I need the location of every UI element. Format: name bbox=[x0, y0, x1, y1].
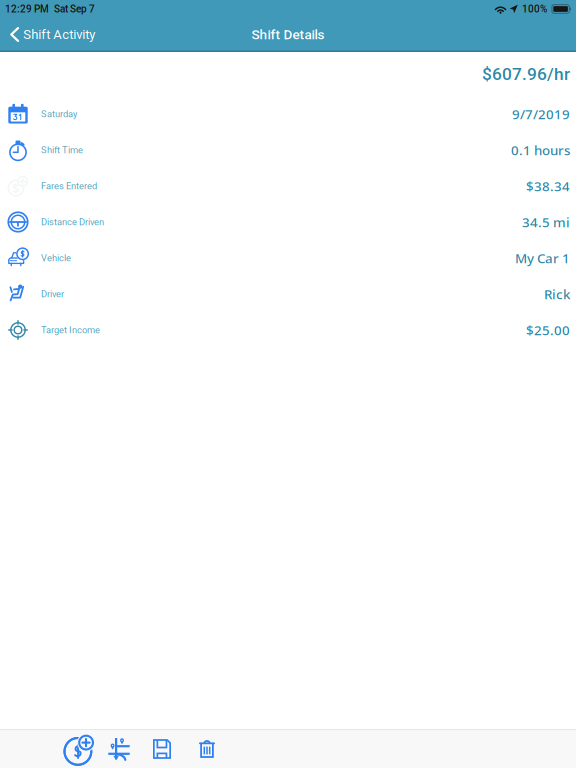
staticText: Distance Driven bbox=[41, 216, 104, 227]
staticText: 100% bbox=[522, 3, 547, 15]
button[interactable]: Map bbox=[99, 731, 135, 767]
staticText: $38.34 bbox=[526, 177, 570, 195]
staticText: Vehicle bbox=[41, 252, 71, 263]
staticText: Target Income bbox=[41, 324, 100, 335]
staticText: 34.5 mi bbox=[522, 213, 570, 231]
button[interactable]: Add fare bbox=[60, 731, 96, 767]
button[interactable]: Shift Activity bbox=[0, 21, 103, 48]
staticText: Shift Time bbox=[41, 144, 83, 155]
staticText: $ bbox=[12, 179, 20, 197]
staticText: Shift Details bbox=[251, 26, 324, 42]
staticText: Sat Sep 7 bbox=[54, 3, 95, 15]
staticText: $25.00 bbox=[526, 321, 570, 339]
staticText: $607.96/hr bbox=[482, 64, 570, 84]
staticText: Saturday bbox=[41, 108, 77, 119]
button[interactable]: Delete bbox=[189, 731, 225, 767]
staticText: Shift Activity bbox=[23, 27, 95, 42]
staticText: Rick bbox=[544, 285, 570, 303]
staticText: My Car 1 bbox=[515, 249, 570, 267]
staticText: 0.1 hours bbox=[511, 141, 570, 159]
staticText: Fares Entered bbox=[41, 180, 97, 191]
button[interactable]: Save bbox=[144, 731, 180, 767]
staticText: Driver bbox=[41, 288, 64, 299]
staticText: 9/7/2019 bbox=[512, 105, 570, 123]
staticText: 12:29 PM bbox=[5, 3, 49, 15]
